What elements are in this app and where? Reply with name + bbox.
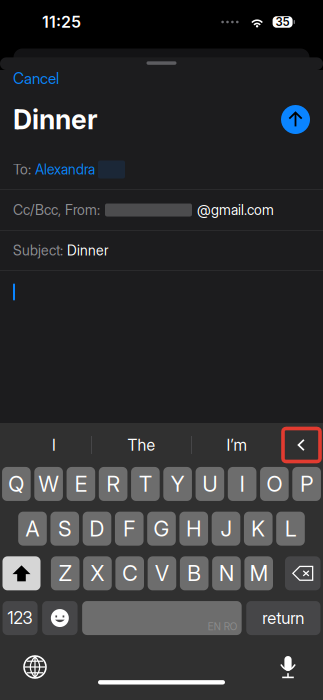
staticText: 35 (276, 15, 290, 29)
button[interactable]: Q (2, 467, 31, 501)
staticText: The (127, 435, 155, 455)
button[interactable]: D (83, 512, 111, 546)
staticText: I’m (226, 435, 246, 455)
staticText: M (250, 560, 268, 586)
button[interactable]: Switch keyboard (18, 655, 52, 679)
staticText: P (300, 471, 313, 497)
staticText: W (39, 471, 59, 497)
button[interactable]: Send (281, 105, 310, 134)
staticText: O (266, 471, 282, 497)
button[interactable]: B (180, 556, 208, 590)
button[interactable]: Collapse predictions (281, 427, 322, 463)
staticText: 123 (8, 608, 33, 628)
staticText: EN RO (208, 620, 237, 633)
staticText: Z (59, 560, 72, 586)
staticText: Dinner (67, 242, 109, 259)
button[interactable]: J (212, 512, 240, 546)
staticText: D (89, 516, 104, 541)
staticText: H (186, 516, 201, 541)
staticText: B (187, 560, 201, 586)
staticText: U (202, 471, 217, 497)
button[interactable]: R (99, 467, 127, 501)
staticText: E (75, 471, 87, 497)
staticText: return (262, 608, 304, 628)
button[interactable]: M (244, 556, 273, 590)
button[interactable]: Z (51, 556, 79, 590)
button[interactable]: P (292, 467, 321, 501)
button[interactable]: Dictate (271, 655, 305, 679)
button[interactable]: U (196, 467, 224, 501)
staticText: Q (8, 471, 24, 497)
staticText: X (90, 560, 104, 586)
staticText: To: (13, 161, 35, 178)
button[interactable]: Y (163, 467, 192, 501)
staticText: Alexandra (35, 161, 95, 178)
button[interactable]: T (131, 467, 160, 501)
button[interactable]: K (244, 512, 273, 546)
button[interactable]: I’m (192, 427, 281, 463)
staticText: Cc/Bcc, From: (13, 201, 100, 218)
button[interactable]: Delete (285, 556, 320, 590)
staticText: 11:25 (42, 12, 81, 32)
button[interactable]: Cancel (13, 70, 59, 86)
staticText: F (123, 516, 135, 541)
button[interactable]: The (92, 427, 191, 463)
staticText: L (285, 516, 296, 541)
button[interactable]: 123 (3, 601, 38, 635)
staticText: A (25, 516, 39, 541)
button[interactable]: N (212, 556, 241, 590)
staticText: @gmail.com (197, 201, 274, 218)
button[interactable]: I (228, 467, 256, 501)
staticText: R (107, 471, 120, 497)
staticText: I (52, 435, 56, 455)
staticText: N (219, 560, 234, 586)
button[interactable]: I (0, 427, 91, 463)
staticText: Subject: (13, 242, 67, 259)
button[interactable]: Shift (2, 556, 40, 590)
staticText: T (139, 471, 152, 497)
staticText: G (153, 516, 169, 541)
button[interactable]: G (147, 512, 176, 546)
button[interactable]: return (246, 601, 320, 635)
button[interactable]: E (67, 467, 95, 501)
staticText: C (122, 560, 137, 586)
button[interactable]: C (115, 556, 144, 590)
button[interactable]: L (276, 512, 305, 546)
button[interactable]: V (148, 556, 176, 590)
staticText: Cancel (13, 69, 59, 88)
staticText: Y (171, 471, 185, 497)
button[interactable]: W (34, 467, 63, 501)
staticText: K (251, 516, 265, 541)
button[interactable]: Emoji (42, 601, 78, 635)
staticText: S (58, 516, 71, 541)
staticText: I (240, 471, 245, 497)
button[interactable]: Space (82, 601, 242, 635)
staticText: V (155, 560, 169, 586)
button[interactable]: H (179, 512, 208, 546)
button[interactable]: F (115, 512, 144, 546)
button[interactable]: A (18, 512, 47, 546)
staticText: J (220, 516, 231, 541)
staticText: Dinner (13, 103, 98, 136)
button[interactable]: S (50, 512, 79, 546)
button[interactable]: X (83, 556, 112, 590)
button[interactable]: O (260, 467, 289, 501)
